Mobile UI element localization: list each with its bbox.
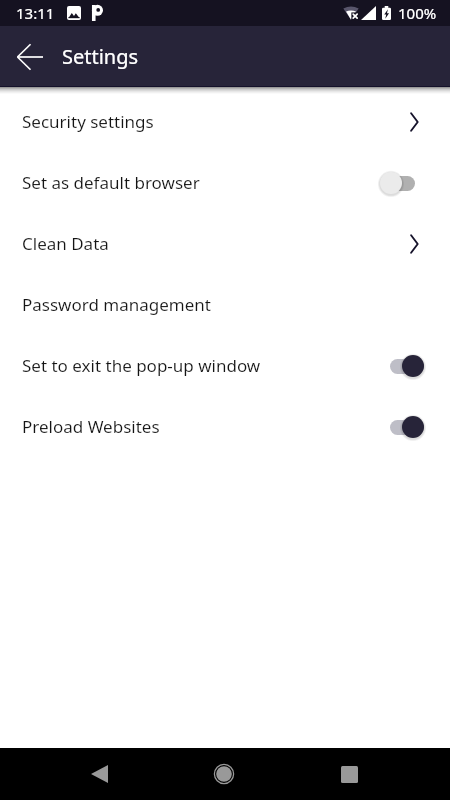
button[interactable]: Back — [5, 32, 55, 82]
staticText: 100% — [398, 3, 437, 23]
staticText: Password management — [22, 293, 211, 316]
staticText: Settings — [62, 43, 139, 70]
button[interactable]: Password management — [0, 274, 450, 335]
button[interactable]: Security settings — [0, 91, 450, 152]
button[interactable]: Clean Data — [0, 213, 450, 274]
staticText: Preload Websites — [22, 415, 160, 438]
staticText: Security settings — [22, 110, 154, 133]
staticText: 13:11 — [16, 3, 55, 23]
button[interactable]: Recent apps — [323, 748, 375, 800]
button[interactable]: Preload Websites — [0, 396, 450, 457]
staticText: Clean Data — [22, 232, 109, 255]
button[interactable]: Home — [198, 748, 250, 800]
button[interactable]: Set to exit the pop-up window — [0, 335, 450, 396]
button[interactable]: Back — [73, 748, 125, 800]
button[interactable]: Set as default browser — [0, 152, 450, 213]
staticText: Set to exit the pop-up window — [22, 354, 261, 377]
staticText: Set as default browser — [22, 171, 200, 194]
